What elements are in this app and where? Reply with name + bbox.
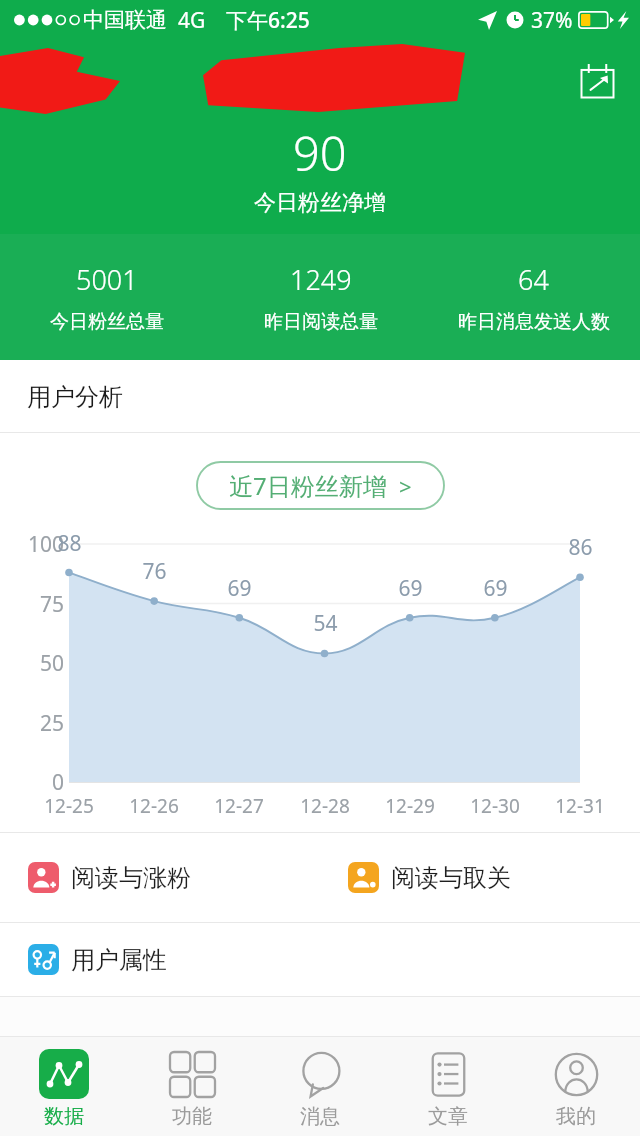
staticText: 64 — [518, 261, 549, 298]
staticText: 54 — [313, 609, 338, 638]
staticText: 用户属性 — [71, 945, 167, 975]
staticText: 12-29 — [385, 793, 435, 819]
staticText: 86 — [568, 533, 593, 562]
staticText: 昨日阅读总量 — [264, 310, 378, 334]
button[interactable]: 阅读与取关 — [320, 833, 640, 922]
staticText: 12-30 — [470, 793, 520, 819]
button[interactable]: 阅读与涨粉 — [0, 833, 320, 922]
staticText: 消息 — [300, 1104, 340, 1129]
staticText: 12-28 — [300, 793, 350, 819]
staticText: 75 — [39, 590, 64, 619]
staticText: 阅读与涨粉 — [71, 863, 191, 893]
button[interactable]: 数据日报 — [574, 58, 620, 104]
staticText: 88 — [57, 529, 82, 558]
staticText: 50 — [39, 649, 64, 678]
button[interactable]: 用户属性 — [0, 923, 320, 996]
staticText: 12-31 — [555, 793, 605, 819]
staticText: 12-25 — [44, 793, 94, 819]
staticText: 12-27 — [214, 793, 264, 819]
staticText: 37% — [531, 6, 573, 35]
button[interactable]: 1249 — [214, 261, 427, 334]
staticText: 69 — [398, 574, 423, 603]
button[interactable]: 5001 — [0, 261, 214, 334]
staticText: 功能 — [172, 1104, 212, 1129]
staticText: 25 — [39, 709, 64, 738]
staticText: 69 — [483, 574, 508, 603]
button[interactable]: 我的 — [512, 1037, 640, 1136]
staticText: 4G — [178, 6, 206, 35]
staticText: 阅读与取关 — [391, 863, 511, 893]
staticText: 昨日消息发送人数 — [458, 310, 610, 334]
button[interactable]: 近7日粉丝新增 — [197, 462, 444, 509]
staticText: 69 — [227, 574, 252, 603]
staticText: 中国联通 — [83, 7, 167, 33]
staticText: 用户分析 — [27, 382, 123, 412]
staticText: > — [399, 471, 412, 501]
staticText: 我的 — [556, 1104, 596, 1129]
button[interactable]: 消息 — [256, 1037, 384, 1136]
button[interactable]: 功能 — [128, 1037, 256, 1136]
button[interactable]: 数据 — [0, 1037, 128, 1136]
staticText: 1249 — [290, 261, 352, 298]
staticText: 12-26 — [129, 793, 179, 819]
staticText: 今日粉丝总量 — [50, 310, 164, 334]
staticText: 90 — [293, 121, 347, 185]
staticText: 100 — [27, 530, 64, 559]
button[interactable]: 文章 — [384, 1037, 512, 1136]
staticText: 5001 — [76, 261, 138, 298]
button[interactable]: 64 — [427, 261, 640, 334]
staticText: 近7日粉丝新增 — [229, 469, 387, 502]
staticText: 0 — [51, 768, 64, 797]
staticText: 下午6:25 — [226, 6, 310, 35]
staticText: 今日粉丝净增 — [254, 189, 386, 217]
staticText: 文章 — [428, 1104, 468, 1129]
staticText: 数据 — [44, 1104, 84, 1129]
staticText: 76 — [142, 557, 167, 586]
